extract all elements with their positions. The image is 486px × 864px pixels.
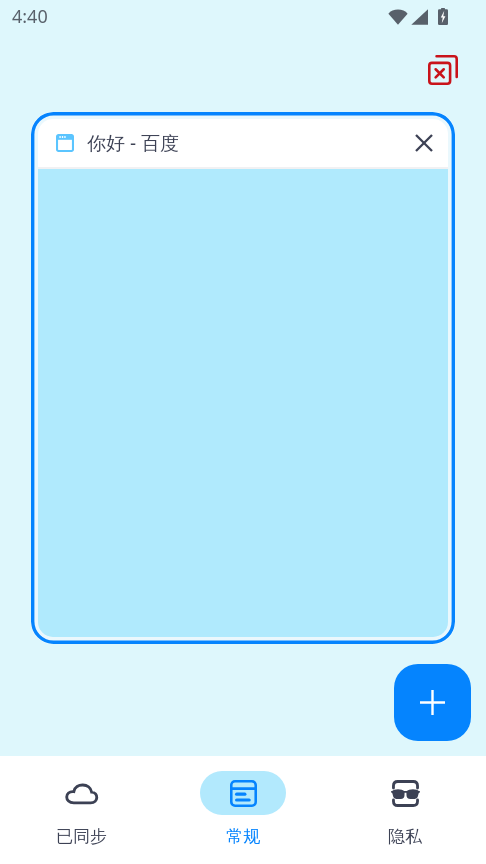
button[interactable]: New tab	[394, 664, 471, 741]
staticText: 4:40	[12, 4, 48, 29]
staticText: 你好 - 百度	[87, 130, 179, 156]
button[interactable]: Close all tabs	[419, 46, 467, 94]
staticText: 隐私	[388, 826, 422, 847]
button[interactable]: 隐私	[324, 756, 486, 864]
staticText: 常规	[226, 826, 260, 847]
button[interactable]: 常规	[162, 756, 324, 864]
button[interactable]: 你好 - 百度	[31, 112, 455, 644]
button[interactable]: 已同步	[0, 756, 162, 864]
staticText: 已同步	[56, 826, 107, 847]
button[interactable]: Close tab	[402, 121, 446, 165]
